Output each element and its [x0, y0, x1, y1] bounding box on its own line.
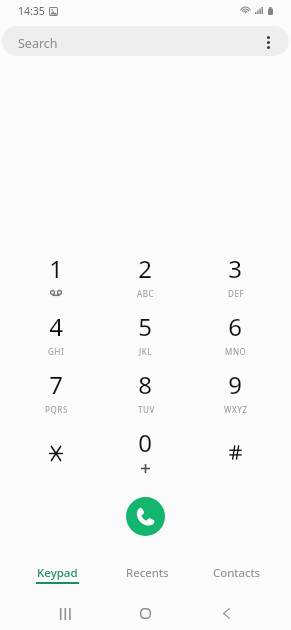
- staticText: Keypad: [37, 565, 78, 581]
- staticText: 0: [138, 426, 152, 459]
- staticText: 5: [138, 310, 152, 343]
- staticText: ABC: [137, 288, 155, 299]
- button[interactable]: 4: [11, 308, 100, 366]
- button[interactable]: 6: [190, 308, 280, 366]
- button[interactable]: 7: [11, 366, 100, 424]
- button[interactable]: More options: [255, 28, 281, 54]
- staticText: 1: [49, 252, 63, 285]
- button[interactable]: 0: [100, 424, 190, 482]
- button[interactable]: [190, 424, 280, 482]
- staticText: 8: [138, 368, 152, 401]
- staticText: GHI: [48, 346, 65, 357]
- button[interactable]: Contacts: [192, 565, 282, 591]
- staticText: 6: [228, 310, 242, 343]
- staticText: 3: [228, 252, 242, 285]
- staticText: 9: [228, 368, 242, 401]
- button[interactable]: Call: [126, 497, 165, 536]
- button[interactable]: Recents: [24, 597, 105, 630]
- button[interactable]: 3: [190, 250, 280, 308]
- staticText: 2: [138, 252, 152, 285]
- button[interactable]: Recents: [102, 565, 192, 591]
- button[interactable]: 5: [100, 308, 190, 366]
- staticText: 14:35: [18, 4, 45, 18]
- button[interactable]: 9: [190, 366, 280, 424]
- staticText: 7: [49, 368, 63, 401]
- button[interactable]: Search: [2, 26, 289, 56]
- staticText: MNO: [225, 346, 247, 357]
- staticText: 4: [49, 310, 63, 343]
- staticText: PQRS: [45, 404, 68, 415]
- button[interactable]: Home: [105, 597, 186, 630]
- staticText: Search: [18, 35, 58, 52]
- staticText: TUV: [138, 404, 155, 415]
- staticText: DEF: [228, 288, 245, 299]
- staticText: WXYZ: [224, 404, 248, 415]
- staticText: Recents: [126, 565, 169, 581]
- staticText: JKL: [139, 346, 153, 357]
- button[interactable]: Back: [186, 597, 267, 630]
- button[interactable]: [11, 424, 100, 482]
- button[interactable]: 1: [11, 250, 100, 308]
- button[interactable]: Keypad: [13, 565, 102, 591]
- staticText: Contacts: [213, 565, 261, 581]
- button[interactable]: 8: [100, 366, 190, 424]
- button[interactable]: 2: [100, 250, 190, 308]
